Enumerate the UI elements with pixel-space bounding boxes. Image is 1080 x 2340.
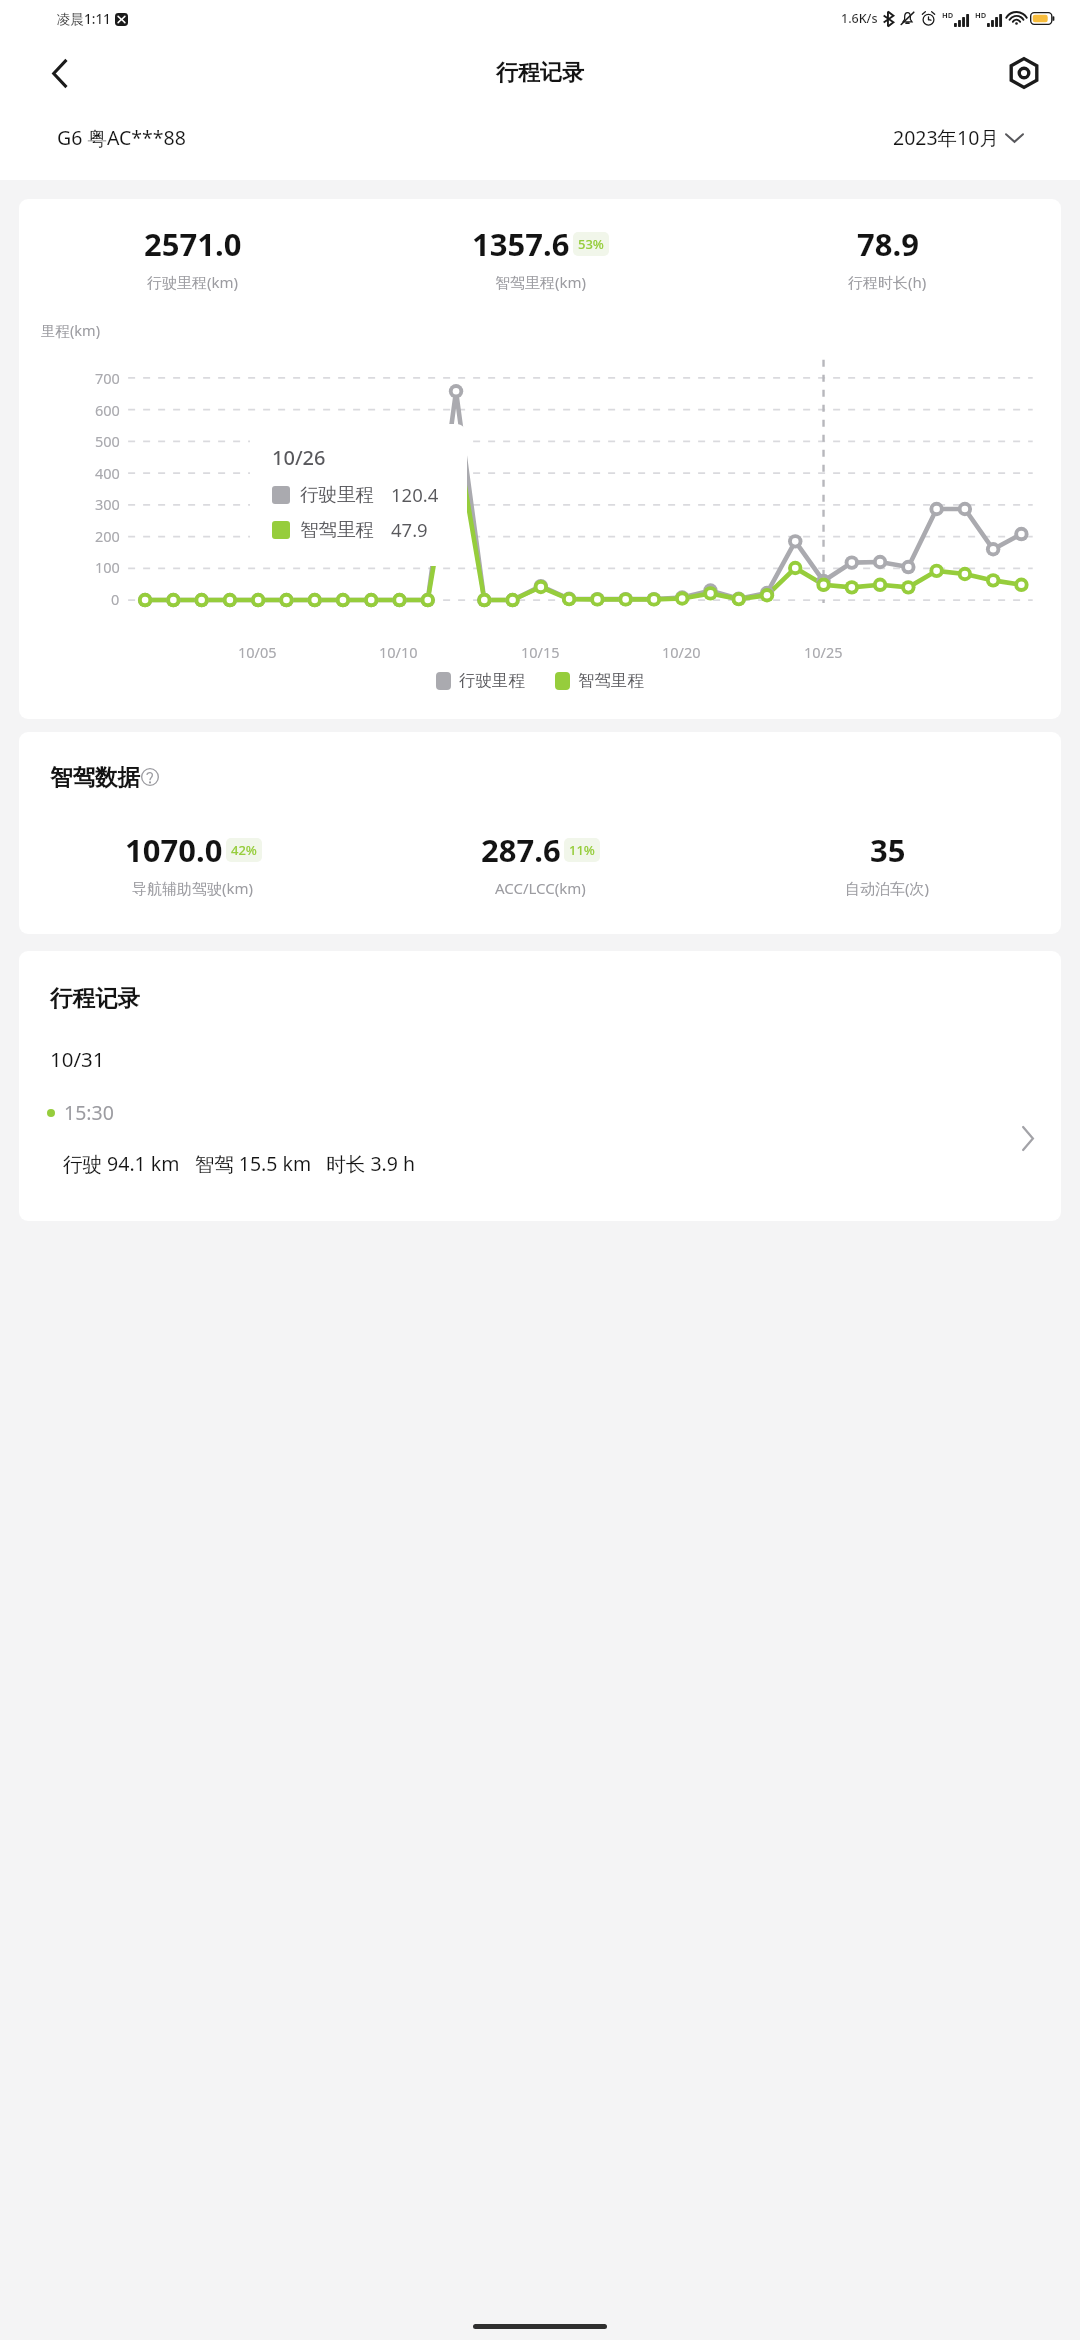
staticText: 10/25 xyxy=(804,642,843,662)
staticText: 行程时长(h) xyxy=(848,272,927,292)
staticText: G6 粤AC***88 xyxy=(57,124,186,151)
staticText: 行驶里程(km) xyxy=(147,272,239,292)
staticText: 10/10 xyxy=(379,642,418,662)
staticText: 600 xyxy=(95,400,120,420)
staticText: 120.4 xyxy=(391,482,439,507)
staticText: 42% xyxy=(231,841,257,859)
staticText: 行程记录 xyxy=(50,984,140,1012)
staticText: 10/20 xyxy=(662,642,701,662)
staticText: 10/15 xyxy=(521,642,560,662)
staticText: 导航辅助驾驶(km) xyxy=(132,878,254,898)
staticText: 11% xyxy=(569,841,595,859)
staticText: 500 xyxy=(95,431,120,451)
button[interactable]: 设置 xyxy=(1000,49,1048,97)
staticText: 35 xyxy=(870,829,906,871)
staticText: 行驶里程 xyxy=(459,670,525,691)
staticText: HD xyxy=(975,10,987,20)
staticText: 2571.0 xyxy=(144,223,242,265)
staticText: 1070.0 xyxy=(125,829,223,871)
staticText: 10/05 xyxy=(238,642,277,662)
staticText: 行程记录 xyxy=(496,59,584,87)
button[interactable]: 智驾里程 xyxy=(555,670,644,691)
staticText: 10/31 xyxy=(50,1045,105,1073)
staticText: 78.9 xyxy=(857,223,919,265)
staticText: 0 xyxy=(111,589,120,609)
button[interactable]: 智驾数据 xyxy=(50,763,159,791)
staticText: 自动泊车(次) xyxy=(845,878,930,898)
staticText: 凌晨1:11 xyxy=(57,10,111,28)
other: 查看详情 xyxy=(1021,1126,1035,1151)
staticText: 15:30 xyxy=(64,1099,114,1126)
staticText: 10/26 xyxy=(272,444,326,471)
staticText: 53% xyxy=(578,235,604,253)
staticText: 1357.6 xyxy=(472,223,570,265)
button[interactable]: 返回 xyxy=(36,49,84,97)
staticText: 1.6K/s xyxy=(841,10,878,27)
button[interactable]: 行驶里程 xyxy=(436,670,525,691)
staticText: 700 xyxy=(95,368,120,388)
staticText: 2023年10月 xyxy=(893,124,999,151)
staticText: 200 xyxy=(95,526,120,546)
staticText: 智驾里程 xyxy=(578,670,644,691)
button[interactable]: 15:30 xyxy=(19,1099,1061,1177)
staticText: HD xyxy=(942,10,954,20)
staticText: 287.6 xyxy=(481,829,561,871)
staticText: 47.9 xyxy=(391,517,428,542)
button[interactable]: 2023年10月 xyxy=(893,124,1023,151)
staticText: 里程(km) xyxy=(41,320,101,340)
staticText: 智驾数据 xyxy=(50,763,140,791)
staticText: 行驶里程 xyxy=(300,483,374,506)
staticText: 智驾里程 xyxy=(300,518,374,541)
staticText: ACC/LCC(km) xyxy=(495,878,586,898)
staticText: 100 xyxy=(95,557,120,577)
staticText: 400 xyxy=(95,463,120,483)
other: 说明 xyxy=(141,768,159,786)
staticText: 300 xyxy=(95,494,120,514)
staticText: 智驾里程(km) xyxy=(495,272,587,292)
staticText: 行驶 94.1 km 智驾 15.5 km 时长 3.9 h xyxy=(63,1150,416,1177)
